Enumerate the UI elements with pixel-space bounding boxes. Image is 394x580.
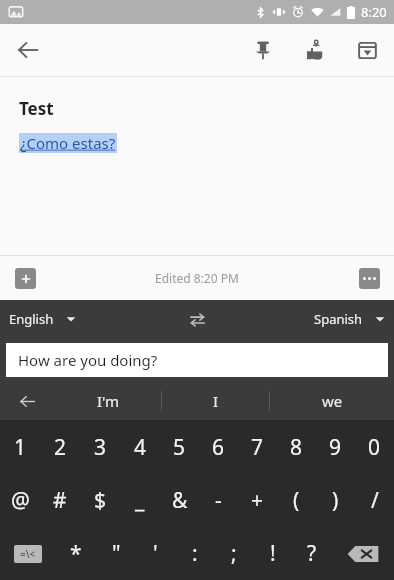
button[interactable]: Backspace — [331, 527, 394, 580]
button[interactable]: / — [355, 474, 394, 527]
button[interactable]: we — [270, 382, 394, 420]
staticText: 0 — [368, 433, 381, 462]
button[interactable]: 1 — [0, 420, 40, 474]
button[interactable]: ( — [277, 474, 316, 527]
button[interactable]: Add — [8, 261, 42, 295]
staticText: English — [9, 310, 54, 328]
button[interactable]: : — [175, 527, 214, 580]
staticText: 8 — [290, 433, 303, 462]
button[interactable]: 5 — [160, 420, 199, 474]
staticText: $ — [94, 486, 107, 515]
staticText: 5 — [173, 433, 186, 462]
button[interactable]: ! — [253, 527, 292, 580]
staticText: 8:20 — [361, 3, 387, 21]
button[interactable]: + — [238, 474, 277, 527]
button[interactable]: 8 — [277, 420, 316, 474]
button[interactable]: Back — [8, 30, 48, 70]
button[interactable]: & — [160, 474, 199, 527]
staticText: ' — [153, 539, 158, 568]
button[interactable]: 7 — [238, 420, 277, 474]
button[interactable]: 3 — [80, 420, 120, 474]
staticText: 2 — [54, 433, 67, 462]
button[interactable]: ' — [136, 527, 175, 580]
button[interactable]: Swap languages — [179, 301, 215, 337]
button[interactable]: _ — [120, 474, 160, 527]
button[interactable]: 4 — [120, 420, 160, 474]
staticText: 9 — [329, 433, 342, 462]
staticText: I — [213, 391, 219, 411]
staticText: 4 — [134, 433, 147, 462]
button[interactable]: I'm — [54, 382, 162, 420]
button[interactable]: 6 — [199, 420, 238, 474]
button[interactable]: =\< — [0, 527, 56, 580]
button[interactable]: * — [56, 527, 96, 580]
button[interactable]: ; — [214, 527, 253, 580]
staticText: 7 — [251, 433, 264, 462]
staticText: Edited 8:20 PM — [155, 270, 239, 286]
staticText: ¿Como estas? — [20, 133, 116, 153]
button[interactable]: I — [162, 382, 270, 420]
staticText: ) — [332, 486, 339, 515]
staticText: Spanish — [314, 310, 363, 328]
button[interactable]: ¿Como estas? — [20, 133, 116, 153]
staticText: 3 — [94, 433, 107, 462]
button[interactable]: Previous — [0, 382, 54, 420]
staticText: How are you doing? — [18, 350, 158, 370]
staticText: * — [70, 539, 82, 568]
staticText: =\< — [20, 547, 36, 561]
staticText: : — [192, 539, 198, 568]
staticText: ( — [293, 486, 300, 515]
button[interactable]: $ — [80, 474, 120, 527]
staticText: 6 — [212, 433, 225, 462]
button[interactable]: @ — [0, 474, 40, 527]
button[interactable]: More options — [352, 261, 386, 295]
staticText: " — [112, 539, 121, 568]
staticText: _ — [135, 486, 145, 515]
button[interactable]: ) — [316, 474, 355, 527]
button[interactable]: - — [199, 474, 238, 527]
button[interactable]: 9 — [316, 420, 355, 474]
staticText: # — [53, 486, 67, 515]
button[interactable]: # — [40, 474, 80, 527]
staticText: + — [251, 486, 264, 515]
button[interactable]: Reminder — [294, 29, 336, 71]
button[interactable]: " — [96, 527, 136, 580]
staticText: & — [172, 486, 188, 515]
staticText: @ — [11, 486, 30, 515]
staticText: 1 — [14, 433, 27, 462]
staticText: we — [322, 391, 343, 411]
button[interactable]: How are you doing? — [6, 343, 388, 377]
staticText: ! — [270, 539, 276, 568]
staticText: I'm — [97, 391, 120, 411]
button[interactable]: 2 — [40, 420, 80, 474]
button[interactable]: Pin — [242, 29, 284, 71]
button[interactable]: ? — [292, 527, 331, 580]
button[interactable]: Archive — [346, 29, 388, 71]
button[interactable]: English — [9, 310, 76, 328]
staticText: Test — [19, 97, 54, 120]
staticText: ; — [231, 539, 237, 568]
staticText: - — [215, 486, 222, 515]
button[interactable]: Spanish — [314, 310, 385, 328]
staticText: / — [371, 486, 379, 515]
button[interactable]: 0 — [355, 420, 394, 474]
staticText: ? — [307, 539, 317, 568]
